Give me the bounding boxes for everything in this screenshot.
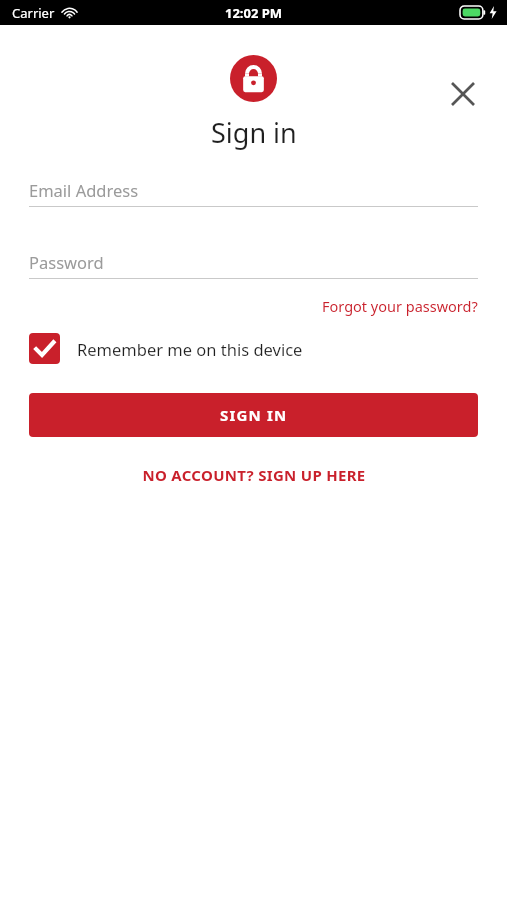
- button[interactable]: Password: [29, 245, 478, 279]
- staticText: Email Address: [29, 179, 139, 201]
- button[interactable]: Remember me on this device: [29, 333, 303, 364]
- staticText: Remember me on this device: [77, 338, 303, 360]
- staticText: 12:02 PM: [225, 4, 283, 22]
- button[interactable]: SIGN IN: [29, 393, 478, 437]
- staticText: SIGN IN: [220, 405, 288, 425]
- button[interactable]: NO ACCOUNT? SIGN UP HERE: [134, 461, 374, 489]
- button[interactable]: Close: [437, 68, 489, 120]
- staticText: Password: [29, 251, 104, 273]
- staticText: Carrier: [12, 4, 55, 22]
- button[interactable]: Forgot your password?: [322, 293, 478, 319]
- staticText: Forgot your password?: [322, 296, 478, 316]
- button[interactable]: Email Address: [29, 173, 478, 207]
- staticText: Sign in: [211, 114, 297, 151]
- staticText: NO ACCOUNT? SIGN UP HERE: [142, 465, 366, 485]
